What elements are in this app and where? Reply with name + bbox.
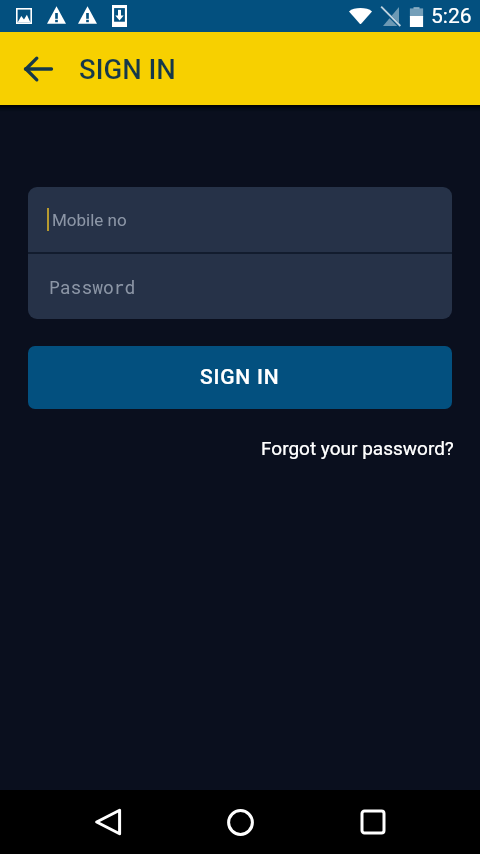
staticText: Password [49, 275, 136, 299]
button[interactable]: SIGN IN [28, 346, 452, 409]
button[interactable]: Password [28, 254, 452, 319]
staticText: Mobile no [52, 210, 127, 230]
staticText: Forgot your password? [261, 437, 454, 459]
button[interactable]: Mobile no [28, 187, 452, 252]
button[interactable]: Back [14, 45, 62, 93]
button[interactable]: Forgot your password? [249, 409, 454, 469]
button[interactable]: Recent apps [347, 796, 399, 848]
staticText: SIGN IN [200, 365, 280, 390]
staticText: 5:26 [431, 4, 472, 29]
button[interactable]: Home [214, 796, 266, 848]
staticText: SIGN IN [79, 53, 176, 85]
button[interactable]: Back [81, 796, 133, 848]
